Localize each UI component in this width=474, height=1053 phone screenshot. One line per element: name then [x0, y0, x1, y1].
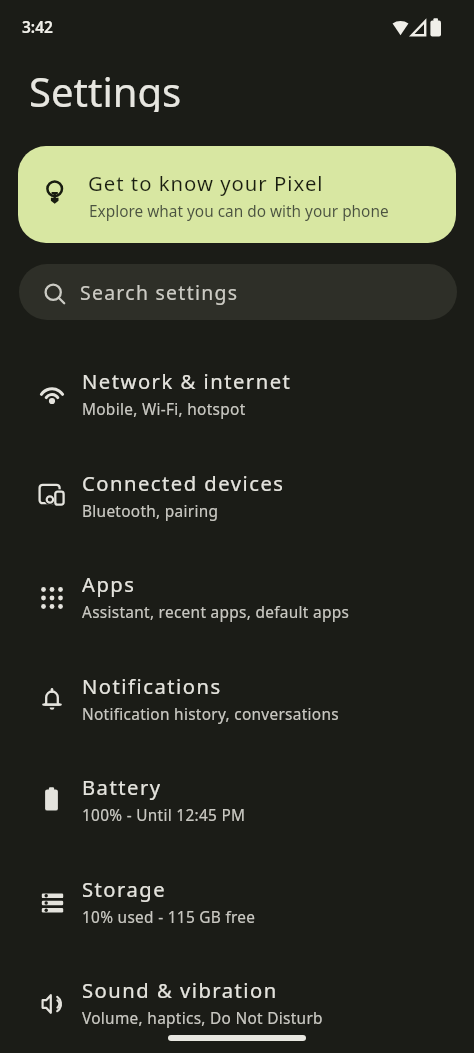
staticText: Network & internet [82, 367, 292, 395]
staticText: Volume, haptics, Do Not Disturb [82, 1008, 323, 1029]
staticText: Settings [29, 64, 182, 112]
staticText: Bluetooth, pairing [82, 501, 219, 522]
button[interactable]: Get to know your Pixel [18, 146, 456, 243]
button[interactable]: Sound & vibration [0, 953, 474, 1053]
staticText: 10% used - 115 GB free [82, 907, 256, 928]
button[interactable]: Search settings [19, 264, 457, 320]
staticText: Get to know your Pixel [88, 169, 324, 197]
button[interactable]: Network & internet [0, 344, 474, 446]
staticText: Mobile, Wi-Fi, hotspot [82, 399, 246, 420]
staticText: 100% - Until 12:45 PM [82, 805, 246, 826]
staticText: Notifications [82, 672, 222, 700]
button[interactable]: Apps [0, 547, 474, 649]
staticText: Apps [82, 570, 136, 598]
button[interactable]: Battery [0, 750, 474, 852]
button[interactable]: Notifications [0, 649, 474, 751]
staticText: Assistant, recent apps, default apps [82, 602, 350, 623]
staticText: Notification history, conversations [82, 704, 339, 725]
staticText: 3:42 [22, 16, 53, 37]
button[interactable]: Storage [0, 852, 474, 954]
button[interactable]: Connected devices [0, 446, 474, 548]
staticText: Connected devices [82, 469, 285, 497]
staticText: Search settings [80, 279, 239, 305]
staticText: Sound & vibration [82, 976, 278, 1004]
staticText: Explore what you can do with your phone [89, 201, 389, 222]
staticText: Battery [82, 773, 162, 801]
staticText: Storage [82, 875, 167, 903]
